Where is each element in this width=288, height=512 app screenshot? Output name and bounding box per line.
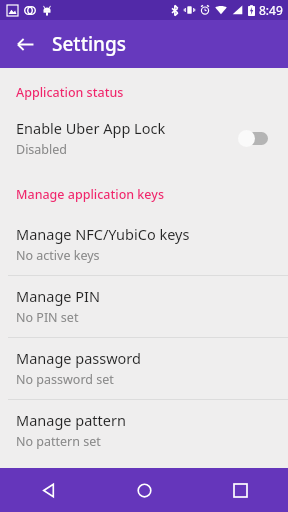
button[interactable]: Manage PIN — [0, 276, 288, 337]
staticText: Application status — [16, 84, 124, 101]
button[interactable]: Enable Uber App Lock — [0, 112, 288, 168]
staticText: No pattern set — [16, 433, 101, 450]
staticText: No password set — [16, 371, 114, 388]
button[interactable]: Manage pattern — [0, 400, 288, 461]
staticText: Manage pattern — [16, 410, 126, 430]
staticText: No active keys — [16, 247, 100, 264]
button[interactable]: Home — [96, 468, 192, 512]
staticText: Disabled — [16, 141, 68, 158]
staticText: No PIN set — [16, 309, 79, 326]
staticText: Manage PIN — [16, 286, 100, 306]
button[interactable]: Manage NFC/YubiCo keys — [0, 214, 288, 275]
staticText: Settings — [52, 31, 126, 57]
button[interactable]: Back — [8, 27, 42, 61]
staticText: Manage password — [16, 348, 141, 368]
button[interactable]: Recent apps — [192, 468, 288, 512]
staticText: Enable Uber App Lock — [16, 118, 166, 138]
staticText: Manage application keys — [16, 186, 164, 203]
staticText: Manage NFC/YubiCo keys — [16, 224, 190, 244]
staticText: 8:49 — [259, 2, 283, 18]
button[interactable]: Manage password — [0, 338, 288, 399]
button[interactable]: Back — [0, 468, 96, 512]
